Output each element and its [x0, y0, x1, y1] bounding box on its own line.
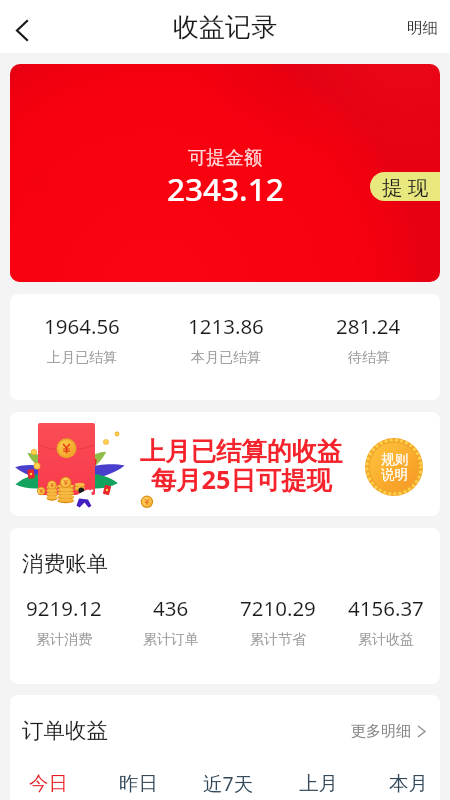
staticText: 上月已结算的收益: [140, 436, 343, 468]
staticText: 订单收益: [22, 717, 108, 744]
staticText: 281.24: [336, 312, 401, 340]
staticText: 消费账单: [22, 550, 108, 577]
button[interactable]: 提 现: [370, 172, 440, 201]
staticText: 上月: [299, 771, 338, 796]
staticText: 4156.37: [348, 594, 424, 622]
staticText: 更多明细: [351, 722, 411, 741]
button[interactable]: 本月: [363, 767, 450, 799]
staticText: 1964.56: [44, 312, 120, 340]
staticText: 2343.12: [167, 167, 284, 210]
staticText: 上月已结算: [47, 349, 117, 367]
staticText: 436: [153, 594, 189, 622]
staticText: 规则: [381, 451, 408, 468]
button[interactable]: 昨日: [93, 767, 183, 799]
staticText: 7210.29: [240, 594, 316, 622]
staticText: 本月: [389, 771, 428, 796]
staticText: 昨日: [119, 771, 158, 796]
staticText: 1213.86: [188, 312, 264, 340]
staticText: 明细: [407, 18, 438, 38]
button[interactable]: 今日: [3, 767, 93, 799]
staticText: 累计节省: [250, 631, 306, 649]
button[interactable]: 规则: [365, 438, 423, 496]
staticText: 可提金额: [188, 146, 262, 169]
button[interactable]: 更多明细: [345, 719, 432, 747]
staticText: 收益记录: [173, 11, 277, 44]
button[interactable]: 明细: [393, 0, 450, 50]
staticText: 9219.12: [26, 594, 102, 622]
button[interactable]: 上月: [273, 767, 363, 799]
button[interactable]: 近7天: [183, 767, 273, 799]
staticText: 今日: [29, 771, 68, 796]
staticText: 每月25日可提现: [151, 462, 332, 497]
staticText: 累计收益: [358, 631, 414, 649]
staticText: 说明: [381, 466, 408, 483]
staticText: 累计消费: [36, 631, 92, 649]
staticText: 本月已结算: [191, 349, 261, 367]
staticText: 提 现: [382, 173, 429, 201]
staticText: 待结算: [348, 349, 390, 367]
staticText: 累计订单: [143, 631, 199, 649]
button[interactable]: Back: [1, 9, 43, 51]
staticText: 近7天: [203, 770, 254, 797]
